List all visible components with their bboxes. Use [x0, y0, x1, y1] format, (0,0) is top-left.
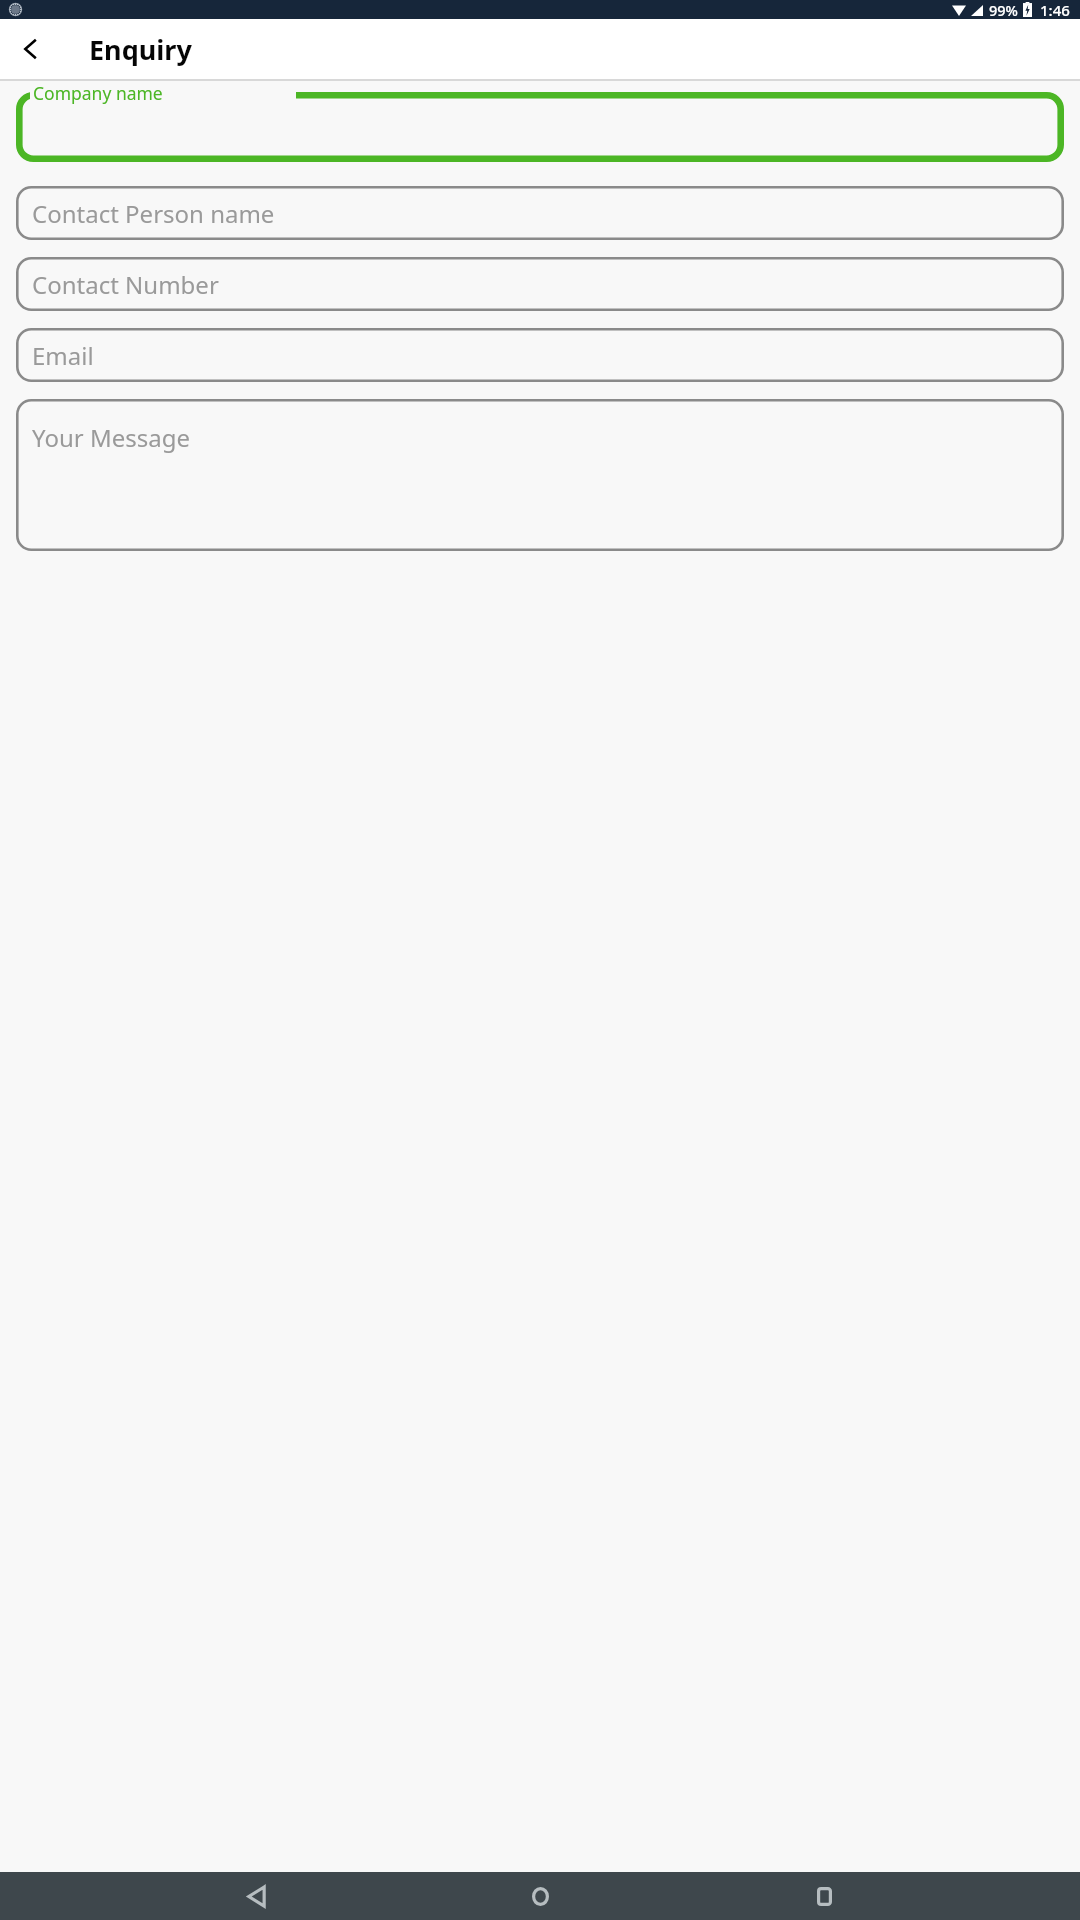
staticText: 1:46: [1040, 0, 1070, 19]
button[interactable]: Contact Number: [16, 257, 1064, 311]
staticText: Company name: [33, 81, 163, 105]
button[interactable]: Home: [512, 1872, 568, 1920]
staticText: Enquiry: [89, 31, 192, 68]
staticText: 99%: [989, 0, 1018, 19]
button[interactable]: Your Message: [16, 399, 1064, 551]
staticText: Contact Person name: [32, 197, 275, 230]
staticText: Your Message: [32, 421, 190, 454]
button[interactable]: Email: [16, 328, 1064, 382]
button[interactable]: Contact Person name: [16, 186, 1064, 240]
button[interactable]: Back: [228, 1872, 284, 1920]
staticText: Email: [32, 339, 94, 372]
button[interactable]: Back: [7, 25, 55, 73]
button[interactable]: Recents: [796, 1872, 852, 1920]
staticText: Contact Number: [32, 268, 219, 301]
button[interactable]: Company name: [16, 92, 1064, 162]
